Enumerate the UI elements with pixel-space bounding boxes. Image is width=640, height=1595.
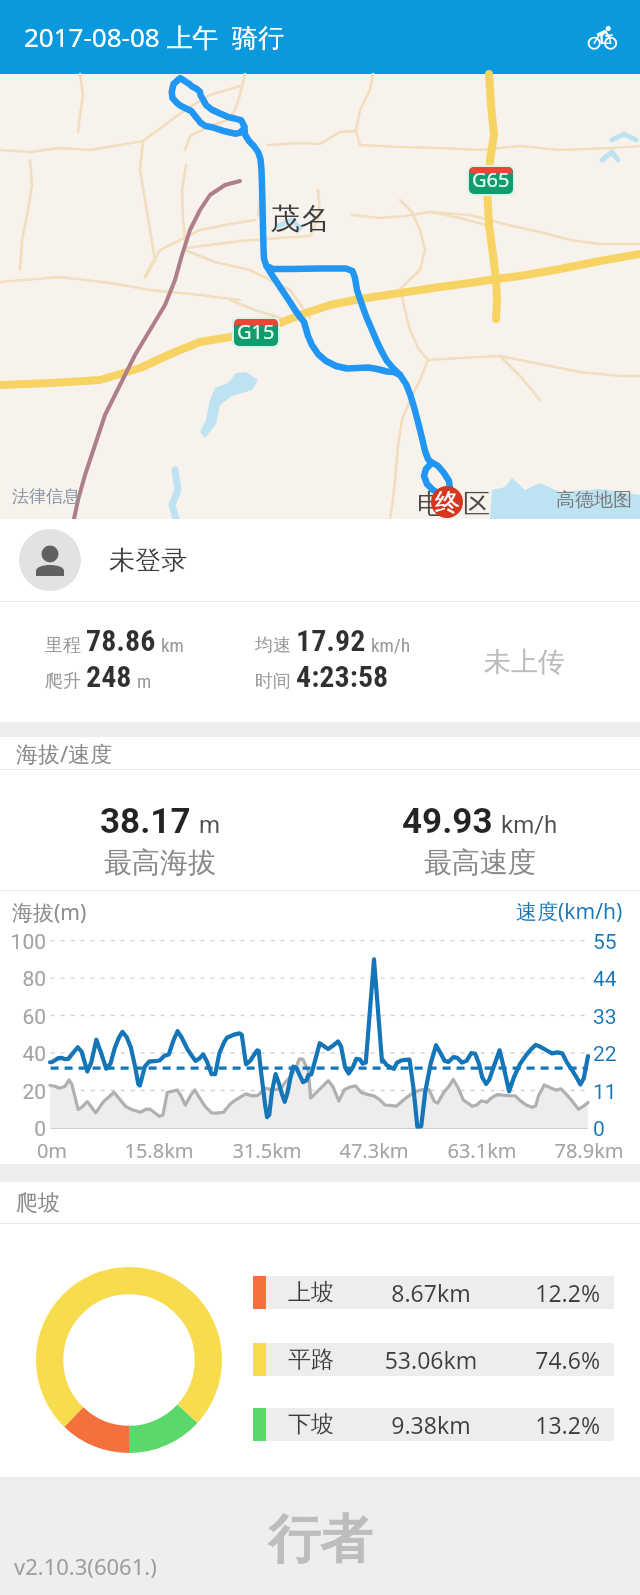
staticText: 248 xyxy=(86,659,132,694)
staticText: 里程 xyxy=(45,634,81,657)
staticText: km xyxy=(161,634,184,656)
staticText: m xyxy=(137,670,152,692)
staticText: 40 xyxy=(0,1042,46,1067)
staticText: km/h xyxy=(371,634,411,656)
staticText: 未登录 xyxy=(109,544,187,577)
staticText: 法律信息 xyxy=(12,486,80,507)
staticText: 31.5km xyxy=(222,1137,312,1164)
staticText: 未上传 xyxy=(484,645,565,679)
staticText: 爬升 xyxy=(45,670,81,693)
staticText: 终 xyxy=(435,487,460,518)
staticText: 0m xyxy=(7,1137,97,1164)
staticText: 0 xyxy=(593,1117,605,1142)
staticText: 平路 xyxy=(288,1345,334,1374)
button[interactable]: 平路 xyxy=(253,1343,614,1376)
staticText: 49.93 xyxy=(402,801,493,842)
staticText: 电 xyxy=(417,487,444,521)
staticText: 速度(km/h) xyxy=(516,897,623,926)
staticText: G15 xyxy=(237,319,275,345)
staticText: 爬坡 xyxy=(16,1189,60,1217)
staticText: 茂名 xyxy=(270,200,330,238)
staticText: 均速 xyxy=(255,634,291,657)
staticText: 海拔/速度 xyxy=(16,738,113,768)
staticText: 2017-08-08 上午 骑行 xyxy=(24,19,285,55)
staticText: 53.06km xyxy=(334,1344,528,1375)
staticText: 4:23:58 xyxy=(296,659,389,694)
staticText: 78.86 xyxy=(86,623,156,658)
button[interactable]: 上坡 xyxy=(253,1276,614,1309)
staticText: 12.2% xyxy=(528,1277,600,1308)
staticText: 区 xyxy=(463,487,490,521)
staticText: v2.10.3(6061.) xyxy=(14,1551,157,1581)
staticText: 9.38km xyxy=(334,1409,528,1440)
staticText: 74.6% xyxy=(528,1344,600,1375)
staticText: 17.92 xyxy=(296,623,366,658)
staticText: 上坡 xyxy=(288,1278,334,1307)
staticText: 最高速度 xyxy=(424,845,536,880)
staticText: 时间 xyxy=(255,670,291,693)
staticText: 47.3km xyxy=(329,1137,419,1164)
staticText: 行者 xyxy=(268,1507,372,1573)
button[interactable]: 未登录 xyxy=(0,519,640,601)
button[interactable]: Cycling xyxy=(583,20,621,58)
staticText: 33 xyxy=(593,1005,617,1030)
staticText: km/h xyxy=(501,811,558,839)
staticText: 100 xyxy=(0,930,46,955)
staticText: 下坡 xyxy=(288,1410,334,1439)
staticText: 22 xyxy=(593,1042,617,1067)
staticText: 8.67km xyxy=(334,1277,528,1308)
staticText: 55 xyxy=(593,930,617,955)
staticText: m xyxy=(199,811,221,839)
staticText: 78.9km xyxy=(544,1137,634,1164)
staticText: 20 xyxy=(0,1080,46,1105)
staticText: G65 xyxy=(472,167,510,193)
staticText: 63.1km xyxy=(437,1137,527,1164)
staticText: 80 xyxy=(0,967,46,992)
staticText: 60 xyxy=(0,1005,46,1030)
staticText: 13.2% xyxy=(528,1409,600,1440)
staticText: 高德地图 xyxy=(556,488,632,512)
staticText: 海拔(m) xyxy=(12,898,87,927)
button[interactable]: 下坡 xyxy=(253,1408,614,1441)
staticText: 15.8km xyxy=(114,1137,204,1164)
staticText: 44 xyxy=(593,967,617,992)
staticText: 0 xyxy=(0,1117,46,1142)
staticText: 最高海拔 xyxy=(104,845,216,880)
staticText: 38.17 xyxy=(100,801,191,842)
staticText: 11 xyxy=(593,1080,617,1105)
